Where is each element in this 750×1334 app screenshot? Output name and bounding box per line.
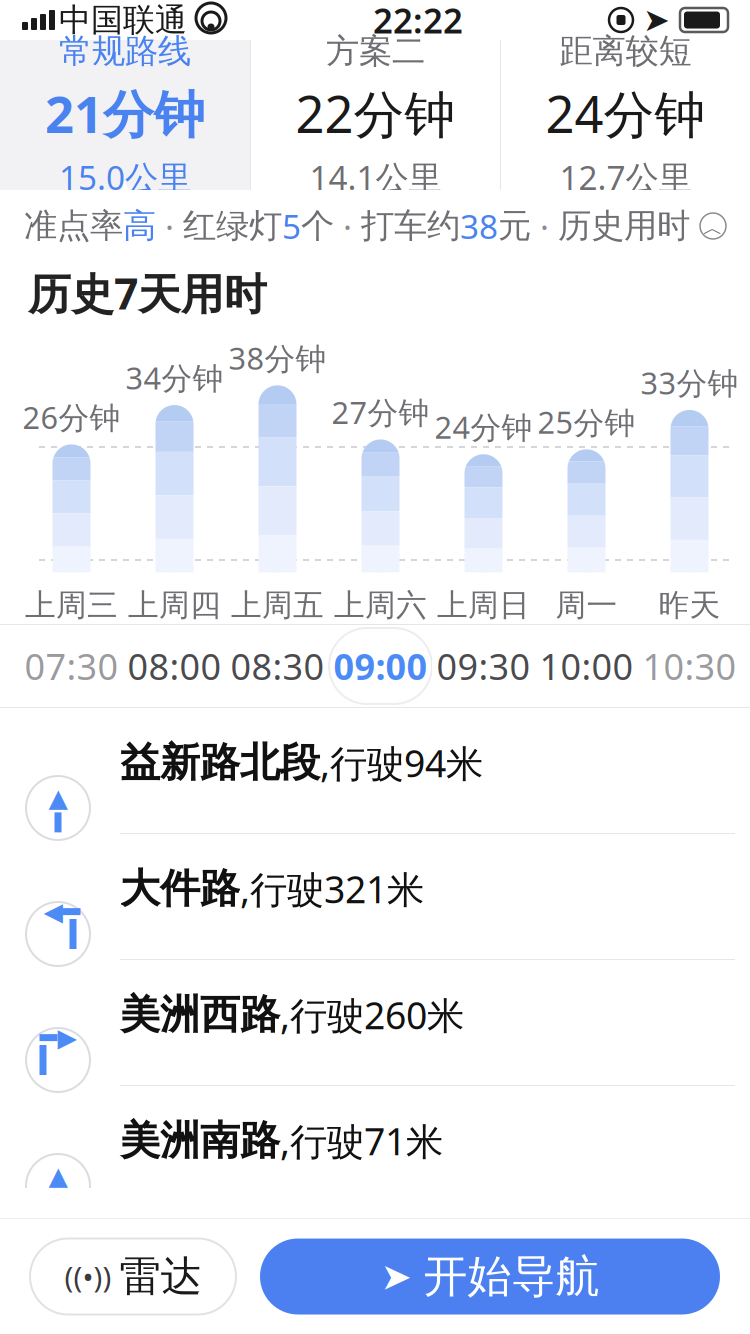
staticText: 38 <box>460 204 498 248</box>
staticText: 上周五 <box>231 586 324 624</box>
staticText: 24分钟 <box>434 406 532 447</box>
staticText: 昨天 <box>658 586 720 624</box>
staticText: 个 <box>301 205 334 246</box>
staticText: · <box>156 204 183 248</box>
button[interactable]: 09:00 <box>329 628 432 704</box>
staticText: ▲ <box>48 1162 67 1190</box>
staticText: ︿ <box>703 216 723 240</box>
button[interactable]: 08:30 <box>226 628 329 704</box>
staticText: 红绿灯 <box>183 205 282 246</box>
staticText: 15.0公里 <box>59 155 191 199</box>
button[interactable]: 距离较短 <box>501 40 750 190</box>
staticText: 34分钟 <box>125 357 223 398</box>
button[interactable]: 美洲南路 <box>0 1086 750 1212</box>
staticText: 09:00 <box>333 642 427 690</box>
staticText: ((•)) <box>64 1257 111 1296</box>
staticText: · <box>334 204 361 248</box>
button[interactable]: 益新路北段 <box>0 708 750 834</box>
staticText: ▲ <box>113 173 136 207</box>
staticText: 08:30 <box>230 642 324 690</box>
staticText: ,行驶260米 <box>280 990 464 1040</box>
staticText: · <box>531 204 558 248</box>
staticText: 上周日 <box>437 586 530 624</box>
staticText: 10:30 <box>642 642 736 690</box>
staticText: 38分钟 <box>228 338 326 378</box>
staticText: 07:30 <box>24 642 118 690</box>
button[interactable]: 10:30 <box>638 628 741 704</box>
staticText: ▲ <box>48 784 67 812</box>
staticText: 上周六 <box>334 586 427 624</box>
button[interactable]: 08:00 <box>123 628 226 704</box>
staticText: ◀ <box>43 897 62 926</box>
button[interactable]: 大件路 <box>0 834 750 960</box>
staticText: 周一 <box>555 586 617 624</box>
staticText: 5 <box>282 204 301 248</box>
staticText: 益新路北段 <box>120 738 320 787</box>
staticText: 09:30 <box>436 642 530 690</box>
button[interactable]: ((•)) <box>30 1238 236 1314</box>
staticText: 10:00 <box>539 642 633 690</box>
button[interactable]: 美洲西路 <box>0 960 750 1086</box>
button[interactable]: 方案二 <box>251 40 500 190</box>
staticText: 26分钟 <box>22 397 120 437</box>
staticText: 准点率 <box>24 205 123 246</box>
staticText: 21分钟 <box>45 80 205 147</box>
button[interactable]: 10:00 <box>535 628 638 704</box>
staticText: 雷达 <box>119 1251 201 1302</box>
staticText: 大件路 <box>120 864 240 913</box>
staticText: 25分钟 <box>537 402 635 442</box>
staticText: 打车约 <box>361 205 460 246</box>
staticText: 33分钟 <box>640 362 738 403</box>
staticText: ,行驶94米 <box>320 738 483 788</box>
staticText: ➤ <box>380 1255 411 1298</box>
button[interactable]: 09:30 <box>432 628 535 704</box>
staticText: 27分钟 <box>331 392 429 432</box>
button[interactable]: 07:30 <box>20 628 123 704</box>
staticText: 常规路线 <box>59 31 191 72</box>
staticText: ➤ <box>643 2 670 38</box>
staticText: 中国联通 <box>59 0 187 40</box>
staticText: 方案二 <box>326 31 425 72</box>
staticText: 上周三 <box>25 586 118 624</box>
button[interactable]: 常规路线 <box>0 40 250 190</box>
staticText: 距离较短 <box>559 31 691 72</box>
staticText: 22分钟 <box>295 80 455 147</box>
staticText: 美洲西路 <box>120 990 280 1039</box>
staticText: 14.1公里 <box>309 155 441 199</box>
staticText: 历史7天用时 <box>28 265 267 321</box>
staticText: 上周四 <box>128 586 221 624</box>
staticText: 开始导航 <box>423 1249 599 1303</box>
button[interactable]: ➤ <box>260 1238 720 1314</box>
staticText: 08:00 <box>127 642 221 690</box>
staticText: 12.7公里 <box>559 155 691 199</box>
button[interactable]: 准点率 <box>0 190 750 262</box>
staticText: ,行驶71米 <box>280 1116 443 1166</box>
staticText: ,行驶321米 <box>240 864 424 914</box>
staticText: 24分钟 <box>545 80 705 147</box>
staticText: 历史用时 <box>558 205 690 246</box>
staticText: 高 <box>123 205 156 246</box>
staticText: ▶ <box>57 1023 76 1052</box>
staticText: 元 <box>498 205 531 246</box>
staticText: 22:22 <box>373 0 463 43</box>
staticText: 美洲南路 <box>120 1116 280 1165</box>
